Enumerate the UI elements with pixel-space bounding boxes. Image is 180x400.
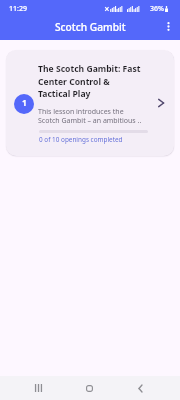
staticText: 0 of 10 openings completed <box>39 135 123 144</box>
button[interactable]: Home <box>77 376 101 400</box>
staticText: 11:29 <box>9 4 27 14</box>
staticText: 36% <box>150 4 164 14</box>
staticText: Scotch Gambit <box>55 20 126 34</box>
staticText: The Scotch Gambit: Fast Center Control &… <box>38 63 144 99</box>
button[interactable]: Recent apps <box>26 376 50 400</box>
button[interactable]: 1 <box>6 50 174 156</box>
staticText: This lesson introduces the Scotch Gambit… <box>38 107 160 125</box>
button[interactable]: More options <box>157 15 179 37</box>
staticText: 1 <box>22 97 27 108</box>
button[interactable]: Back <box>128 376 152 400</box>
